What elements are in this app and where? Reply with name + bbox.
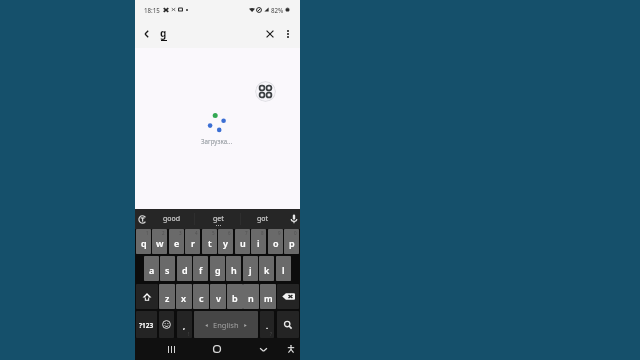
staticText: h xyxy=(231,264,237,276)
staticText: w xyxy=(156,237,164,249)
button[interactable]: a xyxy=(144,256,159,281)
button[interactable]: t xyxy=(202,229,217,254)
button[interactable]: good xyxy=(152,209,192,229)
staticText: c xyxy=(199,292,204,304)
button[interactable]: get xyxy=(198,209,238,229)
staticText: i xyxy=(257,237,260,249)
staticText: g xyxy=(215,264,221,276)
staticText: . xyxy=(266,321,269,331)
staticText: get xyxy=(213,214,224,224)
staticText: 5 xyxy=(212,230,215,236)
staticText: o xyxy=(273,237,279,249)
button[interactable]: Search xyxy=(277,311,299,338)
button[interactable]: Hide keyboard xyxy=(252,338,274,360)
staticText: e xyxy=(174,237,180,249)
button[interactable]: ?123 xyxy=(136,311,157,338)
button[interactable]: Emoji xyxy=(159,311,174,338)
button[interactable]: d xyxy=(177,256,192,281)
staticText: 4 xyxy=(195,230,198,236)
staticText: 9 xyxy=(278,230,281,236)
button[interactable]: m xyxy=(260,284,276,309)
staticText: r xyxy=(191,237,195,249)
staticText: q xyxy=(141,237,147,249)
button[interactable]: w xyxy=(152,229,167,254)
button[interactable]: b xyxy=(227,284,243,309)
button[interactable]: v xyxy=(210,284,226,309)
staticText: ?123 xyxy=(139,321,154,330)
staticText: 18:15 xyxy=(144,6,160,14)
button[interactable]: x xyxy=(176,284,192,309)
staticText: g xyxy=(160,26,167,40)
button[interactable]: Recents xyxy=(156,338,186,360)
staticText: , xyxy=(183,321,186,331)
button[interactable]: l xyxy=(276,256,291,281)
staticText: n xyxy=(248,292,254,304)
staticText: v xyxy=(216,292,221,304)
staticText: f xyxy=(199,264,203,276)
staticText: s xyxy=(165,264,170,276)
staticText: good xyxy=(163,214,181,224)
staticText: a xyxy=(149,264,155,276)
staticText: English xyxy=(213,320,239,330)
staticText: Загрузка... xyxy=(201,137,233,145)
button[interactable]: Back xyxy=(138,25,156,43)
staticText: t xyxy=(208,237,212,249)
button[interactable]: u xyxy=(235,229,250,254)
staticText: m xyxy=(264,292,273,304)
button[interactable]: Clear xyxy=(261,25,279,43)
button[interactable]: . xyxy=(260,311,274,338)
staticText: l xyxy=(282,264,285,276)
button[interactable]: Apps xyxy=(255,81,276,102)
button[interactable]: s xyxy=(160,256,175,281)
button[interactable]: c xyxy=(193,284,209,309)
staticText: 6 xyxy=(228,230,231,236)
staticText: 2 xyxy=(162,230,165,236)
button[interactable]: Clipboard xyxy=(136,209,149,229)
button[interactable]: z xyxy=(159,284,175,309)
button[interactable]: h xyxy=(226,256,241,281)
button[interactable]: j xyxy=(243,256,258,281)
button[interactable]: n xyxy=(243,284,259,309)
staticText: b xyxy=(232,292,238,304)
staticText: d xyxy=(182,264,188,276)
staticText: 7 xyxy=(245,230,248,236)
button[interactable]: q xyxy=(136,229,151,254)
staticText: p xyxy=(289,237,295,249)
staticText: j xyxy=(249,264,252,276)
button[interactable]: k xyxy=(259,256,274,281)
button[interactable]: f xyxy=(193,256,208,281)
staticText: y xyxy=(223,237,228,249)
staticText: 82% xyxy=(271,6,284,14)
button[interactable]: Backspace xyxy=(277,284,299,309)
staticText: ! xyxy=(188,331,190,337)
button[interactable]: English xyxy=(194,311,258,338)
button[interactable]: y xyxy=(218,229,233,254)
button[interactable]: Accessibility xyxy=(282,338,300,360)
staticText: 3 xyxy=(179,230,182,236)
staticText: u xyxy=(240,237,246,249)
staticText: k xyxy=(264,264,270,276)
staticText: x xyxy=(181,292,187,304)
staticText: z xyxy=(165,292,170,304)
button[interactable]: o xyxy=(268,229,283,254)
button[interactable]: i xyxy=(251,229,266,254)
button[interactable]: Home xyxy=(202,338,232,360)
staticText: ? xyxy=(270,331,272,337)
button[interactable]: Shift xyxy=(136,284,158,309)
button[interactable]: got xyxy=(243,209,283,229)
staticText: 8 xyxy=(261,230,264,236)
button[interactable]: g xyxy=(210,256,225,281)
button[interactable]: e xyxy=(169,229,184,254)
staticText: got xyxy=(257,214,269,224)
button[interactable]: r xyxy=(185,229,200,254)
button[interactable]: More options xyxy=(279,25,297,43)
button[interactable]: , xyxy=(177,311,192,338)
staticText: 0 xyxy=(294,230,297,236)
button[interactable]: Voice input xyxy=(287,209,300,229)
button[interactable]: p xyxy=(284,229,299,254)
staticText: 1 xyxy=(146,230,149,236)
